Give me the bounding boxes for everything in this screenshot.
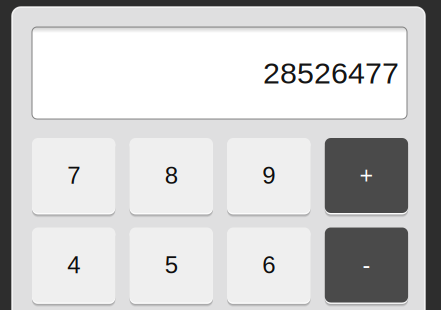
staticText: -: [362, 252, 370, 278]
staticText: 5: [165, 252, 178, 278]
staticText: 4: [67, 252, 80, 278]
button[interactable]: 4: [32, 227, 115, 302]
staticText: 6: [262, 252, 275, 278]
button[interactable]: 7: [32, 138, 115, 213]
button[interactable]: Add: [325, 138, 408, 213]
button[interactable]: 8: [130, 138, 213, 213]
staticText: 28526477: [263, 56, 399, 90]
button[interactable]: 5: [130, 227, 213, 302]
staticText: 9: [262, 162, 275, 189]
staticText: 8: [165, 162, 178, 189]
staticText: 7: [67, 162, 80, 189]
button[interactable]: Subtract: [325, 227, 408, 302]
button[interactable]: 6: [227, 227, 310, 302]
staticText: +: [359, 162, 373, 189]
button[interactable]: 9: [227, 138, 310, 213]
